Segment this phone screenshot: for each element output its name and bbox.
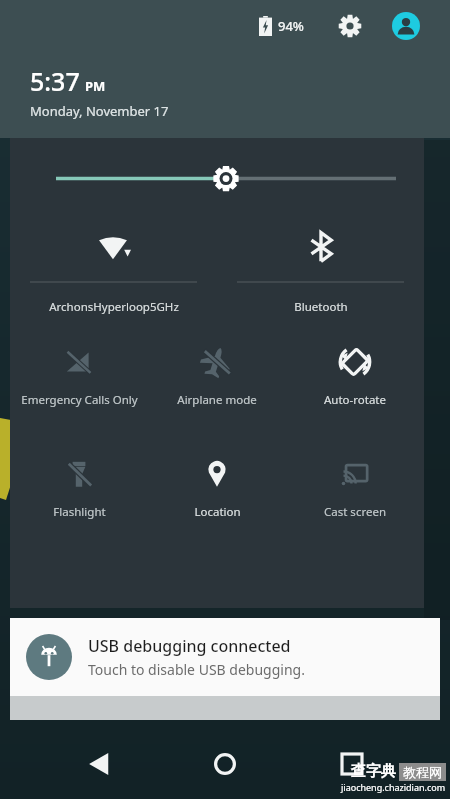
staticText: Flashlight: [53, 504, 106, 520]
staticText: jiaocheng.chazidian.com: [341, 781, 446, 793]
button[interactable]: 5:37: [30, 64, 169, 120]
staticText: Airplane mode: [177, 392, 257, 408]
button[interactable]: Bluetooth: [217, 208, 424, 328]
button[interactable]: ArchonsHyperloop5GHz: [10, 208, 217, 328]
button[interactable]: Auto-rotate: [286, 328, 424, 440]
button[interactable]: Settings: [330, 6, 370, 46]
staticText: Bluetooth: [294, 299, 348, 315]
staticText: 94%: [278, 17, 304, 35]
staticText: Monday, November 17: [30, 102, 169, 120]
button[interactable]: User profile: [386, 6, 426, 46]
button[interactable]: Location: [148, 440, 286, 552]
button[interactable]: Recent apps: [324, 736, 380, 792]
button[interactable]: [10, 691, 440, 720]
staticText: ArchonsHyperloop5GHz: [49, 299, 179, 315]
staticText: Cast screen: [324, 504, 386, 520]
staticText: Location: [194, 504, 241, 520]
staticText: 查字典: [351, 762, 396, 781]
staticText: Emergency Calls Only: [21, 392, 138, 408]
button[interactable]: Home: [197, 736, 253, 792]
staticText: 5:37: [30, 64, 80, 98]
staticText: Touch to disable USB debugging.: [88, 660, 305, 679]
staticText: Auto-rotate: [324, 392, 386, 408]
button[interactable]: Flashlight: [10, 440, 148, 552]
button[interactable]: USB debugging connected: [10, 618, 440, 696]
button[interactable]: Back: [71, 736, 127, 792]
button[interactable]: Brightness: [10, 138, 424, 208]
button[interactable]: Emergency Calls Only: [10, 328, 148, 440]
staticText: 教程网: [403, 764, 442, 780]
button[interactable]: Airplane mode: [148, 328, 286, 440]
staticText: PM: [85, 77, 106, 95]
staticText: USB debugging connected: [88, 635, 291, 657]
button[interactable]: Cast screen: [286, 440, 424, 552]
